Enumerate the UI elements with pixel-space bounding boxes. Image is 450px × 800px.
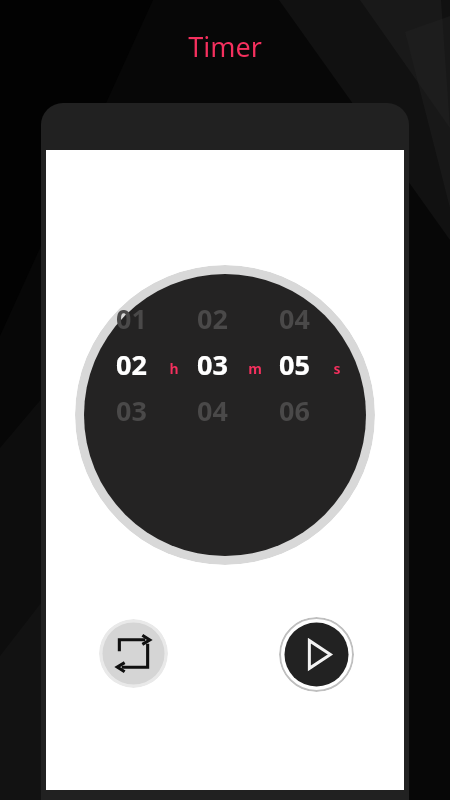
staticText: 06: [279, 392, 310, 429]
staticText: 02: [197, 300, 228, 337]
staticText: 05: [279, 346, 310, 383]
button[interactable]: Start: [279, 617, 354, 692]
button[interactable]: 01: [75, 265, 375, 565]
staticText: 03: [197, 346, 228, 383]
staticText: 03: [116, 392, 147, 429]
staticText: s: [333, 359, 341, 378]
staticText: 01: [116, 300, 147, 337]
staticText: m: [248, 359, 262, 378]
staticText: 04: [279, 300, 310, 337]
staticText: 04: [197, 392, 228, 429]
staticText: h: [169, 359, 179, 378]
staticText: 02: [116, 346, 147, 383]
button[interactable]: Repeat: [99, 619, 168, 688]
staticText: Timer: [188, 28, 262, 64]
